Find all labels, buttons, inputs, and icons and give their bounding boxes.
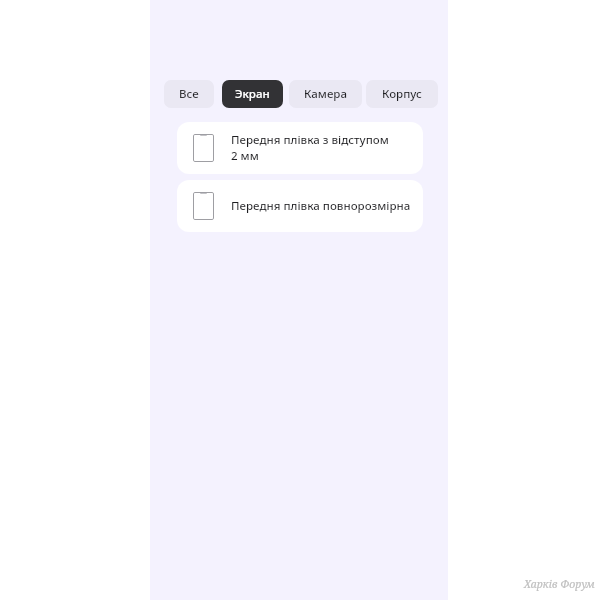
staticText: Экран: [235, 86, 270, 102]
staticText: Передня плівка з відступом 2 мм: [231, 132, 389, 164]
other: Phone screen protector: [193, 134, 214, 162]
staticText: Камера: [304, 86, 347, 102]
staticText: Все: [179, 86, 199, 102]
button[interactable]: Корпус: [366, 80, 438, 108]
button[interactable]: Экран: [222, 80, 283, 108]
button[interactable]: Phone screen protector: [177, 122, 423, 174]
button[interactable]: Phone screen protector: [177, 180, 423, 232]
staticText: Корпус: [382, 86, 422, 102]
staticText: Харків Форум: [524, 577, 595, 591]
button[interactable]: Камера: [289, 80, 362, 108]
button[interactable]: Все: [164, 80, 214, 108]
staticText: Передня плівка повнорозмірна: [231, 198, 411, 214]
other: Phone screen protector: [193, 192, 214, 220]
